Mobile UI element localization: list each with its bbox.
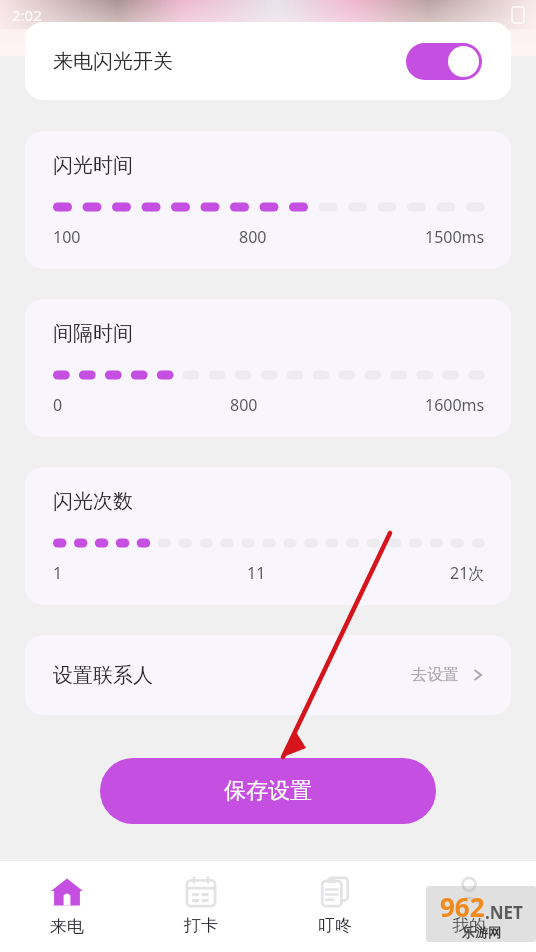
button[interactable]: 叮咚 (268, 860, 402, 952)
button[interactable]: 我的 (402, 860, 536, 952)
staticText: 800 (230, 394, 258, 416)
staticText: 1600ms (425, 394, 485, 416)
button[interactable]: 打卡 (134, 860, 268, 952)
staticText: 来电 (50, 916, 84, 937)
staticText: 1500ms (425, 226, 485, 248)
staticText: 设置联系人 (53, 663, 153, 688)
button[interactable]: 间隔时间 (25, 299, 511, 437)
staticText: 2:02 (12, 5, 42, 25)
staticText: .NET (485, 901, 523, 924)
staticText: 21次 (450, 562, 485, 584)
staticText: 叮咚 (318, 915, 352, 936)
staticText: 保存设置 (224, 777, 312, 805)
staticText: 962 (440, 889, 485, 924)
staticText: 11 (247, 562, 266, 584)
button[interactable]: 来电闪光开关 (25, 22, 511, 100)
button[interactable]: 保存设置 (100, 758, 436, 824)
staticText: 闪光次数 (53, 489, 133, 514)
button[interactable]: 来电 (0, 860, 134, 952)
button[interactable]: 闪光次数 (25, 467, 511, 605)
button[interactable]: 设置联系人 (25, 635, 511, 715)
button[interactable]: 来电闪光开关 (406, 43, 482, 80)
staticText: 去设置 (411, 665, 459, 685)
button[interactable]: 滑块 (53, 202, 485, 212)
staticText: 间隔时间 (53, 321, 133, 346)
staticText: 闪光时间 (53, 153, 133, 178)
button[interactable]: 滑块 (53, 370, 485, 380)
staticText: 乐游网 (462, 924, 501, 940)
button[interactable]: 滑块 (53, 538, 485, 548)
staticText: 800 (239, 226, 267, 248)
staticText: 100 (53, 226, 81, 248)
button[interactable]: 闪光时间 (25, 131, 511, 269)
staticText: 打卡 (184, 915, 218, 936)
staticText: 0 (53, 394, 63, 416)
staticText: 我的 (452, 915, 486, 936)
staticText: 1 (53, 562, 63, 584)
staticText: 来电闪光开关 (53, 49, 173, 74)
